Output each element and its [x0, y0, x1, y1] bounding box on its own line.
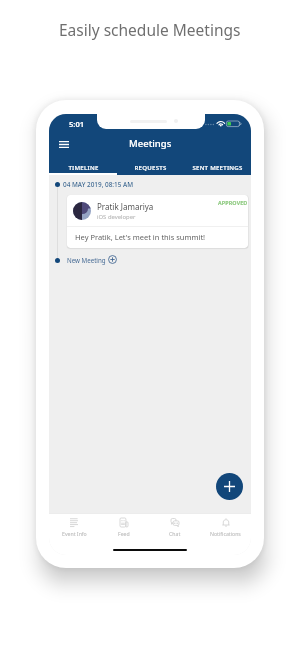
staticText: 04 MAY 2019, 08:15 AM: [63, 180, 134, 189]
staticText: New Meeting: [67, 256, 106, 264]
staticText: iOS developer: [97, 213, 136, 221]
button[interactable]: New meeting: [216, 473, 243, 500]
button[interactable]: Event Info: [49, 514, 99, 540]
staticText: Hey Pratik, Let's meet in this summit!: [75, 232, 206, 242]
button[interactable]: New Meeting: [67, 255, 117, 264]
button[interactable]: Pratik Jamariya: [67, 195, 248, 248]
staticText: Chat: [169, 530, 181, 537]
staticText: REQUESTS: [134, 163, 167, 171]
staticText: Notifications: [210, 530, 241, 537]
staticText: Meetings: [129, 137, 172, 150]
button[interactable]: Feed: [99, 514, 149, 540]
button[interactable]: REQUESTS: [117, 158, 184, 175]
button[interactable]: Open navigation menu: [56, 136, 72, 152]
staticText: Easily schedule Meetings: [59, 19, 241, 40]
staticText: 5:01: [69, 119, 85, 129]
button[interactable]: TIMELINE: [49, 158, 117, 175]
staticText: APPROVED: [218, 199, 248, 206]
button[interactable]: SENT MEETINGS: [184, 158, 251, 175]
staticText: Feed: [118, 530, 130, 537]
button[interactable]: Notifications: [200, 514, 251, 540]
staticText: SENT MEETINGS: [192, 163, 243, 171]
button[interactable]: Chat: [149, 514, 200, 540]
staticText: Pratik Jamariya: [97, 201, 154, 212]
staticText: TIMELINE: [68, 163, 99, 171]
staticText: Event Info: [62, 530, 87, 537]
